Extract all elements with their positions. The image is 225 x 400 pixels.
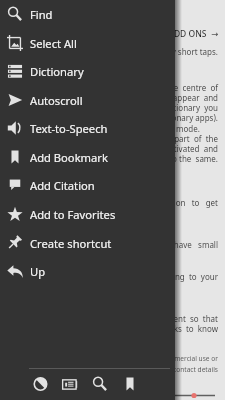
staticText: Add Bookmark (30, 150, 108, 165)
staticText: Add to Favorites (30, 207, 116, 222)
staticText: is part of the (98, 133, 218, 144)
staticText: Up (30, 264, 46, 279)
staticText: present so that (98, 313, 218, 324)
staticText: ADD ONS → (98, 28, 218, 40)
staticText: books to know (98, 323, 218, 334)
button[interactable]: Brightness (26, 370, 54, 398)
staticText: Add Citation (30, 178, 95, 193)
button[interactable]: Bookmark (116, 370, 144, 398)
staticText: for commercial use or (98, 354, 218, 363)
staticText: may have small (98, 239, 218, 250)
staticText: will appear and (98, 92, 218, 103)
button[interactable]: Add Bookmark (0, 143, 175, 171)
button[interactable]: Up (0, 257, 175, 285)
staticText: Dictionary (30, 64, 84, 79)
button[interactable]: Select All (0, 29, 175, 57)
staticText: the contact details (98, 365, 218, 374)
staticText: Text-to-Speech (30, 121, 108, 136)
staticText: Select All (30, 36, 77, 51)
button[interactable]: Add Citation (0, 171, 175, 199)
staticText: ionary apps). (98, 112, 218, 123)
staticText: by short taps. (98, 46, 218, 57)
staticText: do the same. (98, 153, 218, 164)
staticText: the centre of (98, 82, 218, 93)
staticText: activated and (98, 143, 218, 154)
staticText: Autoscroll (30, 93, 83, 108)
staticText: dictionary you (98, 102, 218, 113)
button[interactable]: Create shortcut (0, 229, 175, 257)
button[interactable]: Search (86, 370, 114, 398)
button[interactable]: Text-to-Speech (0, 114, 175, 142)
staticText: Find (30, 7, 53, 22)
staticText: version to get (98, 197, 218, 208)
staticText: according to your (98, 271, 218, 282)
button[interactable]: Reader mode (56, 370, 84, 398)
staticText: mode. (176, 123, 200, 134)
button[interactable]: Add to Favorites (0, 200, 175, 228)
button[interactable]: Find (0, 0, 175, 28)
button[interactable]: Autoscroll (0, 86, 175, 114)
staticText: Create shortcut (30, 236, 112, 251)
button[interactable]: Dictionary (0, 57, 175, 85)
